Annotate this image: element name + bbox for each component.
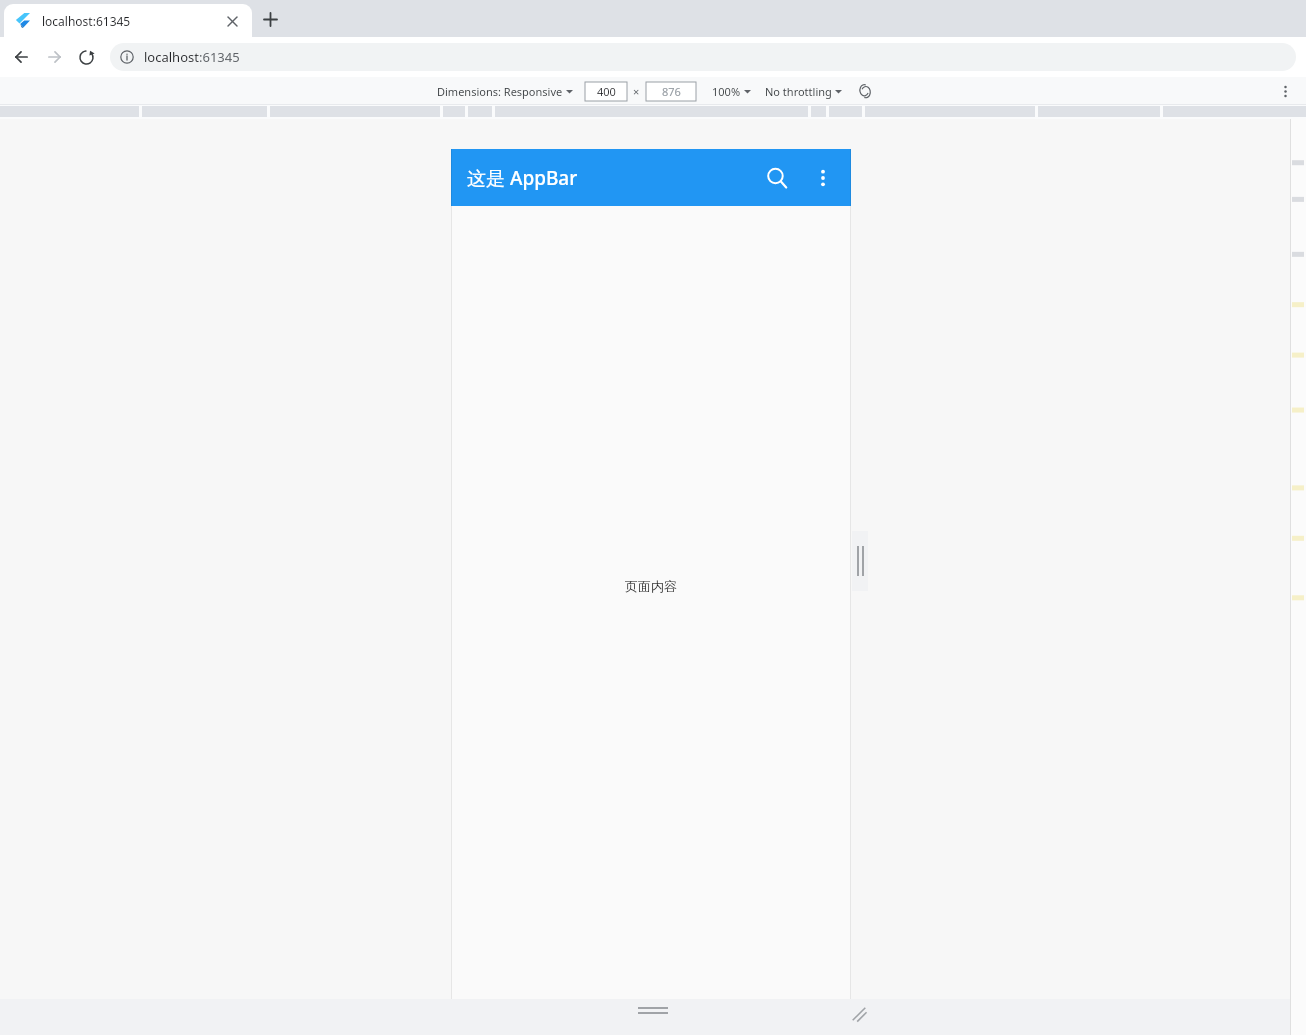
staticText: No throttling [765,84,832,99]
button[interactable]: 400 [585,82,627,101]
staticText: 页面内容 [625,578,677,594]
staticText: :61345 [199,48,240,66]
staticText: 100% [712,84,741,99]
button[interactable]: More options [1274,80,1296,102]
button[interactable]: Resize width [852,531,868,591]
button[interactable]: localhost:61345 [4,4,252,37]
button[interactable]: localhost [110,43,1296,71]
button[interactable]: Resize height [638,1007,668,1014]
button[interactable]: Dimensions: Responsive [437,84,573,99]
staticText: 这是 AppBar [467,165,578,191]
button[interactable]: No throttling [765,84,842,99]
button[interactable]: Reload [72,43,100,71]
staticText: 876 [662,84,681,99]
button[interactable]: Back [8,43,36,71]
button[interactable]: Forward [40,43,68,71]
button[interactable]: 876 [646,82,696,101]
button[interactable]: Resize height [622,1007,682,1023]
staticText: × [633,84,640,99]
button[interactable]: Close tab [223,12,241,30]
button[interactable]: More options [800,155,846,201]
staticText: localhost:61345 [42,13,131,29]
button[interactable]: New tab [256,5,284,33]
button[interactable]: Search [754,155,800,201]
button[interactable]: 100% [712,84,751,99]
button[interactable]: Rotate [854,80,876,102]
staticText: Dimensions: Responsive [437,84,563,99]
staticText: localhost [144,48,199,66]
staticText: 400 [597,84,616,99]
button[interactable]: Resize [850,1005,868,1023]
